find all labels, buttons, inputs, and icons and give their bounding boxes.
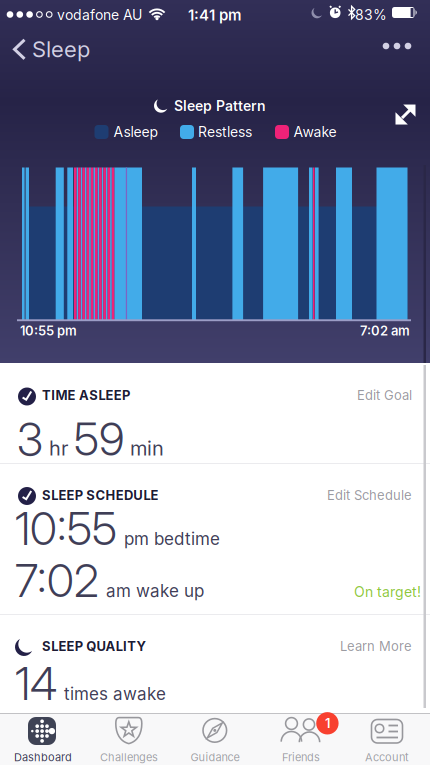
staticText: 10:55 pm: [20, 323, 77, 339]
staticText: Sleep Pattern: [174, 97, 266, 114]
staticText: Guidance: [190, 750, 239, 764]
staticText: Awake: [293, 123, 336, 140]
staticText: vodafone AU: [57, 6, 142, 23]
button[interactable]: Guidance: [172, 713, 258, 765]
staticText: Learn More: [340, 638, 412, 654]
staticText: 1: [325, 715, 330, 731]
button[interactable]: Dashboard: [0, 713, 86, 765]
staticText: Edit Goal: [357, 387, 412, 403]
staticText: Friends: [282, 750, 320, 764]
staticText: min: [130, 436, 164, 460]
staticText: pm bedtime: [124, 529, 220, 549]
button[interactable]: [395, 104, 416, 125]
button[interactable]: [372, 32, 422, 60]
staticText: Dashboard: [14, 750, 72, 764]
button[interactable]: Challenges: [86, 713, 172, 765]
staticText: 1:41 pm: [188, 6, 242, 24]
staticText: Restless: [198, 123, 252, 140]
staticText: 3: [17, 412, 43, 466]
button[interactable]: Learn More: [340, 638, 412, 654]
staticText: 83%: [355, 6, 387, 23]
staticText: 7:02: [15, 553, 99, 608]
staticText: Sleep: [32, 36, 90, 63]
staticText: am wake up: [106, 581, 204, 601]
staticText: times awake: [64, 684, 166, 704]
staticText: 59: [74, 412, 124, 466]
staticText: Edit Schedule: [327, 487, 412, 503]
staticText: 10:55: [15, 501, 117, 556]
staticText: 7:02 am: [360, 323, 410, 339]
staticText: TIME ASLEEP: [42, 387, 130, 403]
staticText: SLEEP SCHEDULE: [42, 487, 159, 503]
staticText: hr: [49, 436, 68, 460]
staticText: On target!: [354, 583, 421, 600]
staticText: Asleep: [113, 123, 158, 140]
button[interactable]: Sleep: [0, 36, 90, 63]
button[interactable]: Account: [344, 713, 430, 765]
staticText: 14: [15, 656, 57, 711]
button[interactable]: Edit Schedule: [327, 487, 412, 503]
button[interactable]: Edit Goal: [357, 387, 412, 403]
staticText: Challenges: [100, 750, 158, 764]
staticText: SLEEP QUALITY: [42, 638, 146, 654]
button[interactable]: 1: [258, 713, 344, 765]
staticText: Account: [365, 750, 409, 764]
